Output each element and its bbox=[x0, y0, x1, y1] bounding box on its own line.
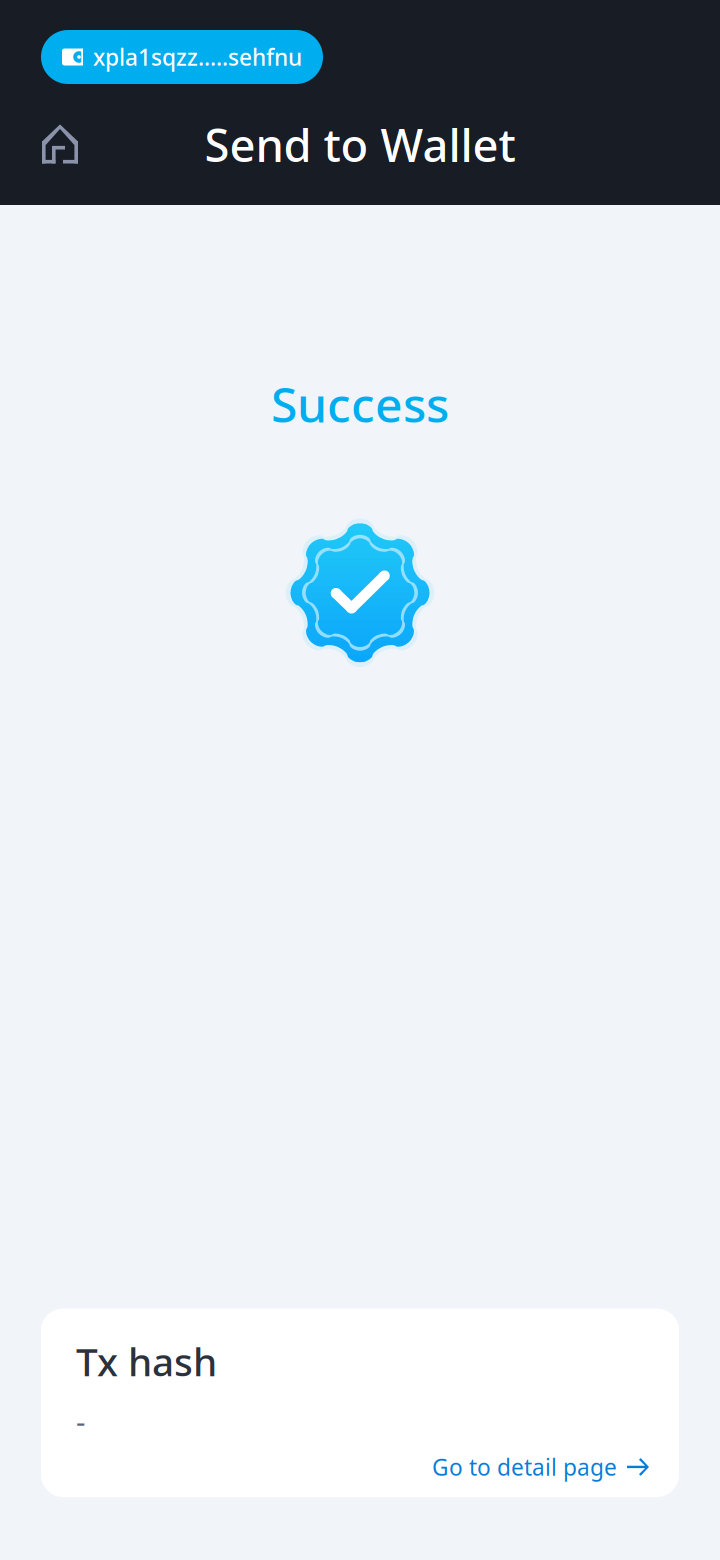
staticText: Go to detail page bbox=[432, 1452, 617, 1482]
staticText: - bbox=[76, 1402, 85, 1441]
button[interactable]: Go to detail page bbox=[432, 1452, 649, 1482]
staticText: xpla1sqzz.....sehfnu bbox=[93, 42, 302, 72]
staticText: Success bbox=[271, 372, 449, 436]
button[interactable]: Home bbox=[42, 125, 78, 163]
staticText: Tx hash bbox=[76, 1336, 217, 1387]
staticText: Send to Wallet bbox=[204, 114, 515, 175]
button[interactable]: xpla1sqzz.....sehfnu bbox=[41, 30, 323, 84]
